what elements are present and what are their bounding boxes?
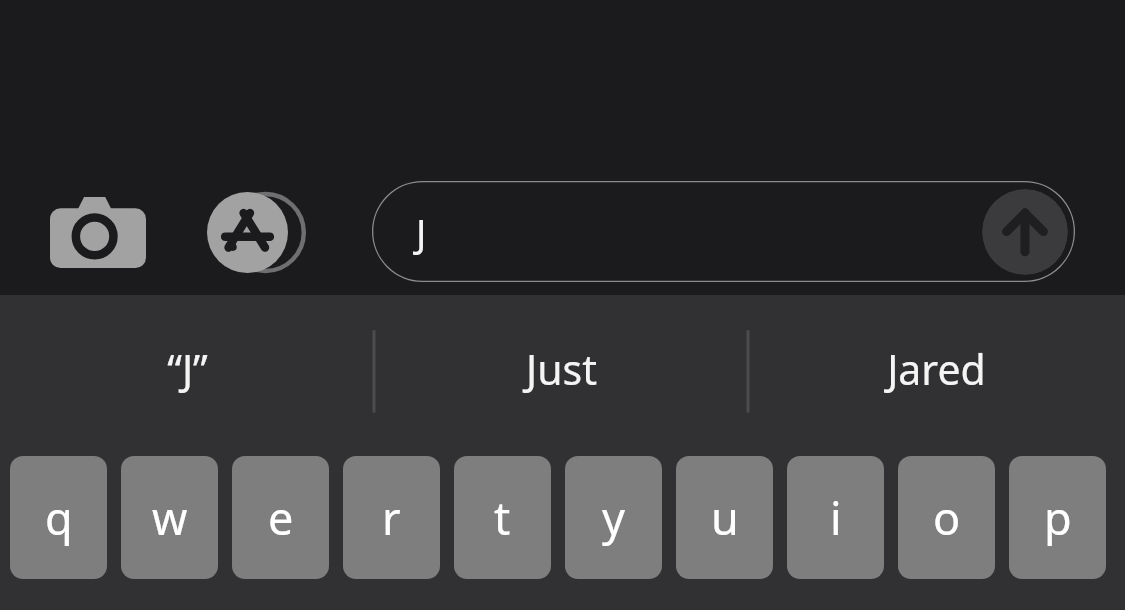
staticText: “J” <box>167 341 208 397</box>
staticText: r <box>382 487 401 548</box>
button[interactable]: e <box>232 456 329 579</box>
staticText: p <box>1044 487 1072 548</box>
staticText: e <box>268 487 294 548</box>
button[interactable]: y <box>565 456 662 579</box>
button[interactable]: r <box>343 456 440 579</box>
button[interactable]: Jared <box>748 295 1125 442</box>
staticText: y <box>602 487 625 548</box>
button[interactable]: q <box>10 456 107 579</box>
button[interactable]: Camera <box>50 197 146 268</box>
button[interactable]: Just <box>374 295 748 442</box>
button[interactable]: J <box>372 181 1075 282</box>
button[interactable]: Send <box>982 189 1068 275</box>
staticText: q <box>45 487 73 548</box>
staticText: w <box>152 487 188 548</box>
staticText: o <box>933 487 961 548</box>
button[interactable]: i <box>787 456 884 579</box>
staticText: u <box>711 487 739 548</box>
button[interactable]: t <box>454 456 551 579</box>
staticText: Jared <box>887 341 986 397</box>
staticText: i <box>830 487 842 548</box>
button[interactable]: “J” <box>0 295 374 442</box>
button[interactable]: p <box>1009 456 1106 579</box>
staticText: J <box>416 206 427 258</box>
button[interactable]: o <box>898 456 995 579</box>
button[interactable]: App Store <box>207 192 317 273</box>
staticText: Just <box>526 341 597 397</box>
button[interactable]: u <box>676 456 773 579</box>
button[interactable]: w <box>121 456 218 579</box>
staticText: t <box>494 487 511 548</box>
